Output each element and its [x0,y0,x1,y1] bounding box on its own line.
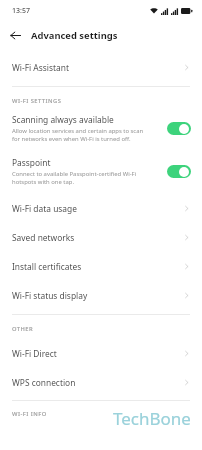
button[interactable]: Passpoint [0,153,202,190]
button[interactable]: Back [0,22,31,48]
button[interactable]: WPS connection [0,368,202,397]
staticText: Connect to available Passpoint-certified… [12,170,137,186]
button[interactable]: Toggle setting [167,122,191,135]
staticText: Scanning always available [12,114,114,125]
staticText: Advanced settings [31,29,118,42]
button[interactable]: Wi-Fi Direct [0,339,202,368]
button[interactable]: Scanning always available [0,110,202,147]
staticText: WI-FI SETTINGS [12,97,62,105]
staticText: Passpoint [12,157,51,168]
staticText: Allow location services and certain apps… [12,127,144,143]
staticText: WPS connection [12,377,76,388]
button[interactable]: Wi-Fi status display [0,281,202,310]
button[interactable]: Wi-Fi data usage [0,194,202,223]
staticText: TechBone [113,407,191,430]
staticText: Wi-Fi Direct [12,348,57,359]
staticText: Wi-Fi data usage [12,203,77,214]
staticText: Wi-Fi status display [12,290,88,301]
button[interactable]: Wi-Fi Assistant [0,53,202,81]
staticText: Install certificates [12,261,82,272]
staticText: WI-FI INFO [12,410,47,418]
button[interactable]: Install certificates [0,252,202,281]
button[interactable]: Saved networks [0,223,202,252]
staticText: OTHER [12,325,34,333]
button[interactable]: Toggle setting [167,165,191,178]
staticText: 13:57 [12,6,30,16]
staticText: Saved networks [12,232,75,243]
staticText: Wi-Fi Assistant [12,62,69,73]
